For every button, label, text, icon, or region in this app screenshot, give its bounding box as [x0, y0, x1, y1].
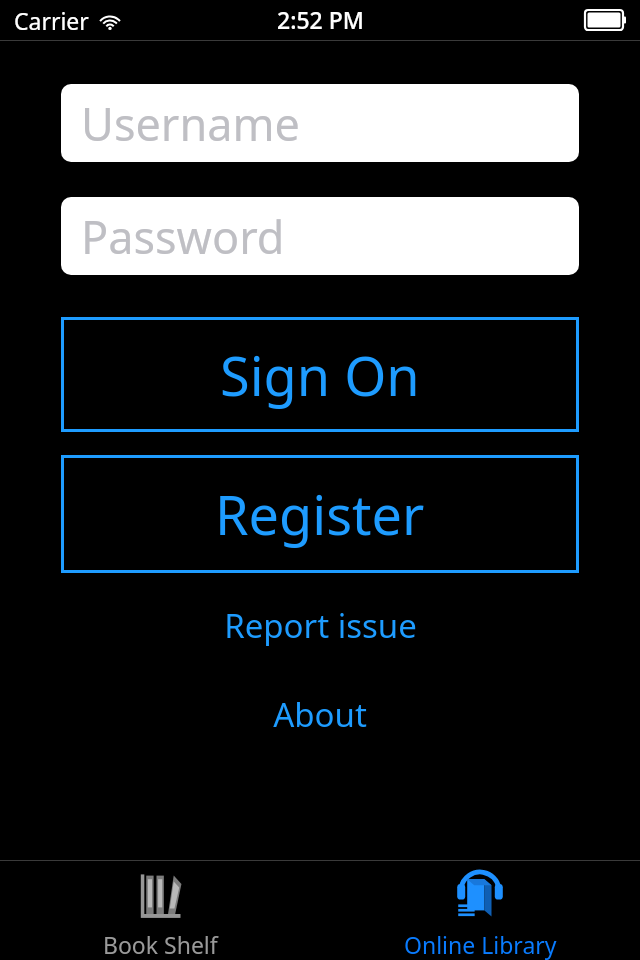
staticText: Register — [215, 477, 425, 551]
staticText: Carrier — [14, 5, 89, 36]
staticText: Report issue — [224, 603, 417, 648]
button[interactable]: Username — [61, 84, 579, 162]
staticText: Username — [81, 93, 300, 154]
staticText: Book Shelf — [103, 929, 218, 960]
button[interactable]: Report issue — [0, 603, 640, 648]
button[interactable]: Sign On — [61, 317, 579, 432]
button[interactable]: Online Library — [320, 861, 640, 960]
button[interactable]: Book Shelf — [0, 861, 320, 960]
button[interactable]: About — [0, 692, 640, 737]
staticText: About — [273, 692, 367, 737]
button[interactable]: Password — [61, 197, 579, 275]
staticText: Online Library — [404, 929, 557, 960]
button[interactable]: Register — [61, 455, 579, 573]
staticText: 2:52 PM — [277, 4, 364, 35]
staticText: Password — [81, 206, 285, 267]
staticText: Sign On — [220, 338, 420, 412]
